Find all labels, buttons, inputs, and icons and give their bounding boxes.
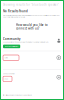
button[interactable]: Call us xyxy=(3,51,61,69)
staticText: Ask the community xyxy=(5,45,19,47)
staticText: Call us xyxy=(4,57,8,59)
staticText: Chat xyxy=(4,78,7,80)
staticText: No Results Found xyxy=(3,9,28,13)
staticText: We couldn't find what you were looking f… xyxy=(3,15,59,18)
button[interactable]: Community xyxy=(3,30,61,51)
staticText: How would you like to connect with us? xyxy=(16,23,48,30)
button[interactable]: Send us an email xyxy=(3,70,61,83)
staticText: Community xyxy=(3,37,20,41)
staticText: Send us an email xyxy=(3,73,14,75)
staticText: Showing results for "bluetooth speaker" xyxy=(3,3,59,6)
staticText: Still need help? Contact our support tea… xyxy=(5,94,31,96)
staticText: Ask a question or find an answer from ot… xyxy=(3,41,48,43)
